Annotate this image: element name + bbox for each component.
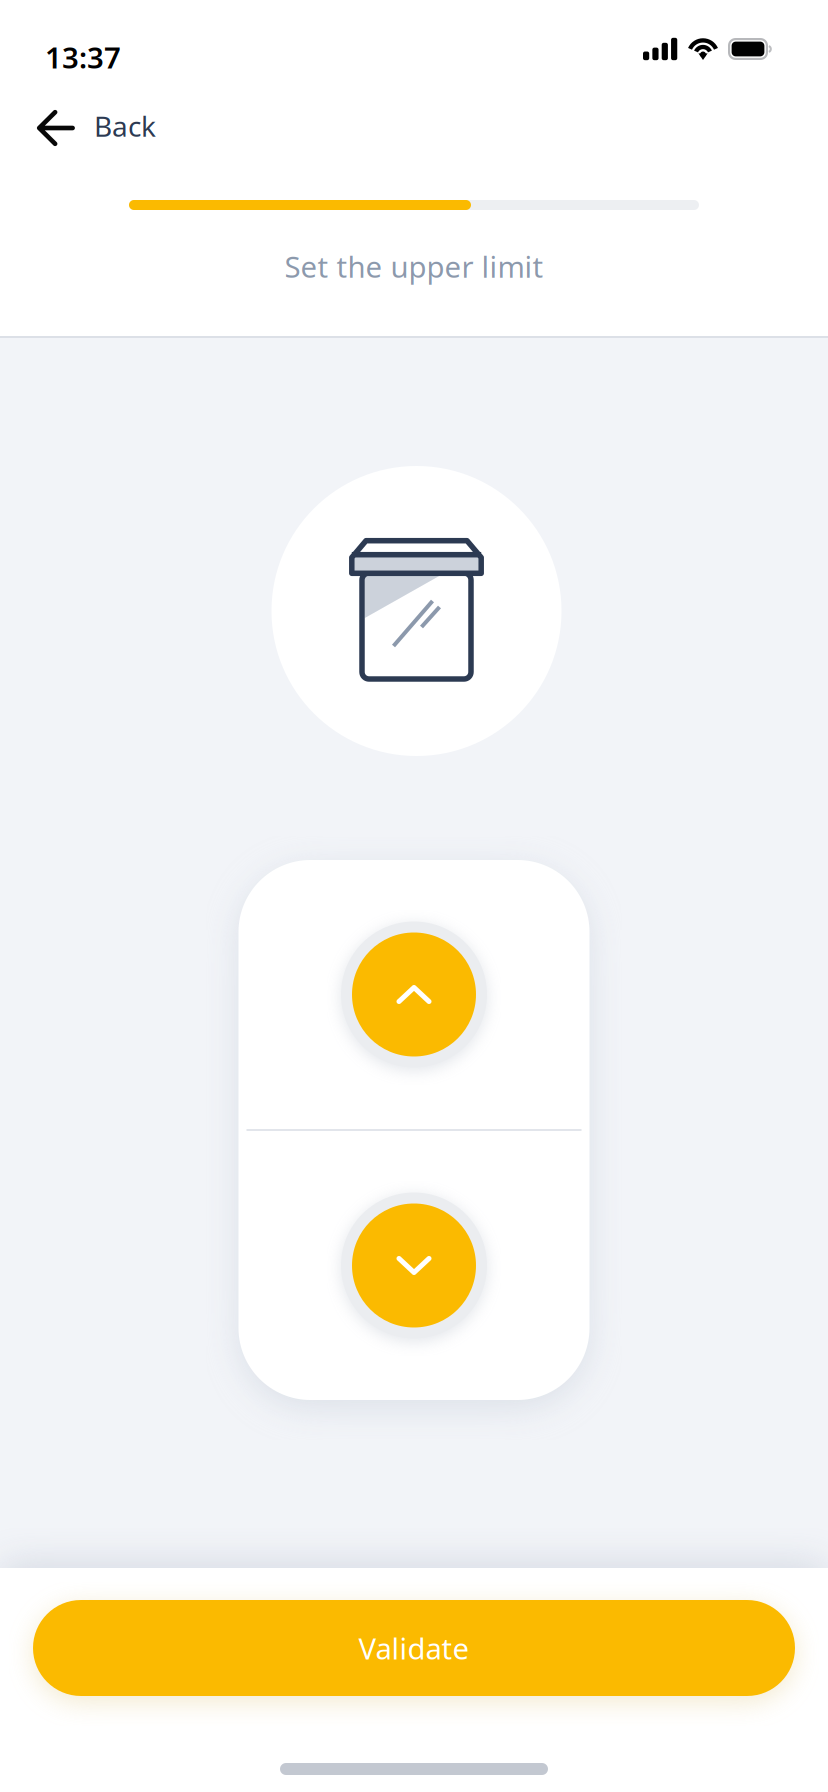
button[interactable]: Lower the upper limit	[334, 1185, 494, 1345]
button[interactable]: Back	[0, 88, 828, 164]
button[interactable]: Raise the upper limit	[334, 914, 494, 1074]
staticText: Set the upper limit	[284, 247, 543, 286]
button[interactable]: Validate	[33, 1600, 795, 1696]
staticText: 13:37	[45, 37, 121, 76]
staticText: Back	[94, 107, 156, 145]
staticText: Validate	[358, 1628, 469, 1667]
